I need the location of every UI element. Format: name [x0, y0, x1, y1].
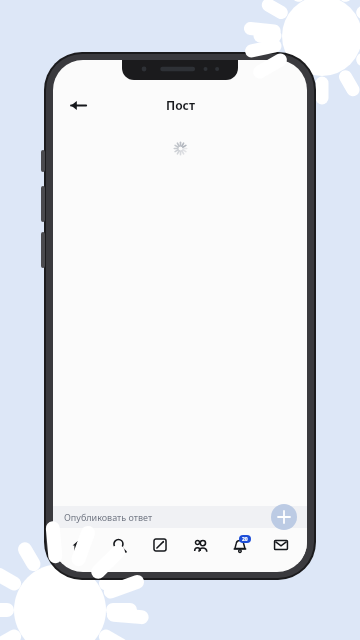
staticText: Пост: [166, 97, 195, 113]
button[interactable]: Communities: [185, 533, 215, 557]
button[interactable]: Compose: [145, 533, 175, 557]
button[interactable]: Back: [59, 86, 97, 124]
button[interactable]: Notifications: [226, 533, 256, 557]
button[interactable]: Messages: [266, 533, 296, 557]
button[interactable]: Search: [104, 533, 134, 557]
button[interactable]: Home: [64, 533, 94, 557]
staticText: Опубликовать ответ: [64, 511, 153, 523]
button[interactable]: Опубликовать ответ: [53, 506, 307, 528]
staticText: 20: [242, 536, 248, 543]
button[interactable]: New post: [271, 504, 297, 530]
